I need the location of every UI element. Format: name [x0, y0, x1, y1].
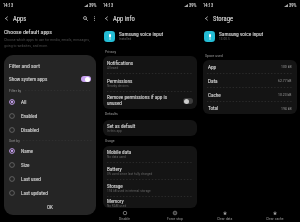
staticText: App info — [113, 15, 135, 23]
staticText: Storage — [213, 15, 233, 23]
staticText: 13.00.5 — [219, 37, 230, 41]
staticText: 39% — [89, 3, 97, 8]
staticText: 194 kB used in internal storage — [107, 189, 151, 193]
staticText: Allowed — [107, 66, 119, 70]
staticText: Samsung voice input — [219, 31, 264, 37]
staticText: Battery — [107, 166, 122, 172]
staticText: Apps — [13, 15, 27, 23]
button[interactable]: Clear cache — [250, 208, 300, 222]
staticText: 39% — [289, 3, 297, 8]
button[interactable]: Memory — [103, 197, 197, 208]
staticText: Choose which apps to use for media, emai… — [4, 37, 96, 48]
staticText: 14:13 — [3, 3, 14, 8]
button[interactable]: Battery — [103, 163, 197, 179]
button[interactable]: Permissions — [103, 74, 197, 91]
staticText: Size — [21, 162, 30, 168]
staticText: Installed — [119, 37, 132, 41]
staticText: 10.23 kB — [278, 92, 292, 97]
staticText: Samsung voice input — [119, 31, 164, 37]
staticText: Name — [21, 148, 34, 154]
staticText: Enabled — [21, 113, 38, 119]
staticText: Usage — [105, 138, 115, 143]
button[interactable]: Total — [203, 102, 297, 114]
staticText: Cache — [208, 92, 221, 98]
staticText: Storage — [107, 183, 123, 189]
staticText: 39% — [189, 3, 197, 8]
staticText: Disable — [119, 216, 131, 220]
staticText: App — [208, 64, 217, 70]
button[interactable]: Enabled — [4, 109, 96, 123]
staticText: Space used — [205, 53, 223, 58]
button[interactable]: Data — [203, 74, 297, 87]
staticText: Mobile data — [107, 149, 132, 155]
staticText: Data — [208, 78, 218, 84]
staticText: Sort by — [9, 138, 20, 143]
staticText: Total — [208, 105, 219, 111]
staticText: Set as default — [107, 123, 136, 129]
staticText: No data used — [107, 155, 126, 159]
button[interactable]: Clear data — [200, 208, 250, 222]
staticText: Permissions — [107, 78, 133, 84]
staticText: Remove permissions if app is unused — [107, 94, 181, 107]
staticText: Defaults — [105, 111, 118, 116]
staticText: In this app — [107, 129, 122, 133]
staticText: Last updated — [21, 190, 48, 196]
button[interactable]: Name — [4, 144, 96, 158]
button[interactable]: All — [4, 95, 96, 109]
button[interactable]: More options — [90, 14, 99, 23]
staticText: Show system apps — [9, 76, 48, 82]
button[interactable]: App — [203, 60, 297, 73]
button[interactable]: Search — [81, 14, 90, 23]
button[interactable]: OK — [4, 200, 96, 214]
staticText: Disabled — [21, 127, 39, 133]
button[interactable]: Remove permissions if app is unused — [103, 92, 197, 109]
staticText: Force stop — [167, 216, 183, 220]
button[interactable]: Set as default — [103, 120, 197, 136]
staticText: Privacy — [105, 49, 117, 54]
staticText: Notifications — [107, 60, 134, 66]
button[interactable]: Disable — [100, 208, 150, 222]
button[interactable]: Notifications — [103, 56, 197, 73]
button[interactable]: Last used — [4, 172, 96, 186]
staticText: OK — [47, 204, 53, 210]
staticText: 62.77 kB — [278, 78, 292, 83]
staticText: Choose default apps — [4, 29, 52, 36]
staticText: Clear cache — [266, 216, 284, 220]
staticText: 14:13 — [203, 3, 214, 8]
button[interactable]: Cache — [203, 88, 297, 101]
staticText: Last used — [21, 176, 41, 182]
button[interactable]: Last updated — [4, 186, 96, 200]
staticText: Memory — [107, 198, 124, 204]
staticText: Filter by — [9, 88, 22, 93]
staticText: 194 kB — [281, 106, 292, 111]
staticText: No RAM used — [107, 204, 127, 208]
staticText: 0% used since last fully charged — [107, 172, 153, 176]
button[interactable]: Show system apps — [4, 72, 96, 86]
button[interactable]: Mobile data — [103, 146, 197, 162]
button[interactable]: Disabled — [4, 123, 96, 137]
staticText: Filter and sort — [9, 63, 40, 70]
staticText: 100 kB — [281, 64, 292, 69]
button[interactable]: Size — [4, 158, 96, 172]
staticText: All — [21, 99, 27, 105]
button[interactable]: Navigate up — [202, 14, 211, 23]
staticText: Nearby devices — [107, 84, 129, 88]
button[interactable]: Force stop — [150, 208, 200, 222]
button[interactable]: Navigate up — [2, 14, 11, 23]
button[interactable]: Storage — [103, 180, 197, 196]
staticText: 14:13 — [103, 3, 114, 8]
button[interactable]: Navigate up — [102, 14, 111, 23]
staticText: Clear data — [217, 216, 233, 220]
